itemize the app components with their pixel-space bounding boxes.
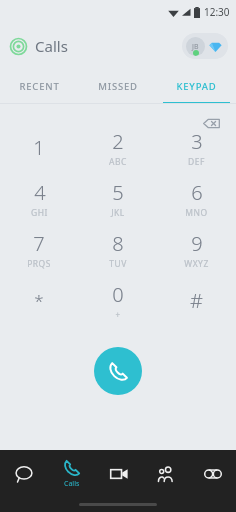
button[interactable]: 6 [157, 173, 236, 224]
staticText: 2 [112, 128, 124, 155]
button[interactable]: MISSED [78, 68, 157, 104]
staticText: PRQS [27, 258, 51, 270]
staticText: TUV [109, 258, 127, 270]
staticText: # [190, 287, 203, 314]
button[interactable]: JB [182, 33, 228, 59]
button[interactable]: # [157, 275, 236, 326]
button[interactable]: 8 [78, 224, 157, 275]
button[interactable]: Backspace [196, 108, 226, 138]
staticText: GHI [31, 207, 48, 219]
staticText: RECENT [19, 80, 60, 93]
button[interactable]: 9 [157, 224, 236, 275]
staticText: 6 [191, 179, 203, 206]
staticText: MISSED [98, 80, 138, 93]
staticText: 4 [34, 179, 46, 206]
button[interactable]: Call [94, 347, 142, 395]
other: Calls logo [10, 38, 27, 55]
button[interactable]: 5 [78, 173, 157, 224]
button[interactable]: 0 [78, 275, 157, 326]
staticText: * [34, 289, 44, 312]
staticText: ABC [109, 156, 127, 168]
staticText: 1 [33, 134, 45, 161]
staticText: JKL [111, 207, 125, 219]
staticText: KEYPAD [176, 80, 217, 93]
staticText: WXYZ [184, 258, 209, 270]
button[interactable]: Calls [48, 450, 95, 498]
button[interactable]: Voicemail [189, 450, 236, 498]
button[interactable]: * [0, 275, 78, 326]
button[interactable]: 1 [0, 122, 78, 173]
staticText: DEF [188, 156, 205, 168]
staticText: 8 [112, 230, 124, 257]
other: Premium [209, 40, 222, 53]
staticText: Calls [35, 36, 68, 56]
staticText: 5 [112, 179, 124, 206]
staticText: MNO [185, 207, 208, 219]
staticText: 3 [191, 128, 203, 155]
staticText: 7 [33, 230, 45, 257]
button[interactable]: Contacts [142, 450, 189, 498]
button[interactable]: 2 [78, 122, 157, 173]
button[interactable]: 4 [0, 173, 78, 224]
staticText: + [115, 309, 121, 320]
button[interactable]: 3 [157, 122, 236, 173]
staticText: 9 [191, 230, 203, 257]
button[interactable]: Chat [0, 450, 48, 498]
button[interactable]: 7 [0, 224, 78, 275]
button[interactable]: RECENT [0, 68, 78, 104]
staticText: 12:30 [204, 5, 230, 19]
staticText: 0 [112, 281, 124, 308]
staticText: JB [192, 42, 199, 52]
staticText: Calls [64, 479, 80, 489]
button[interactable]: Video [95, 450, 142, 498]
button[interactable]: KEYPAD [157, 68, 236, 104]
